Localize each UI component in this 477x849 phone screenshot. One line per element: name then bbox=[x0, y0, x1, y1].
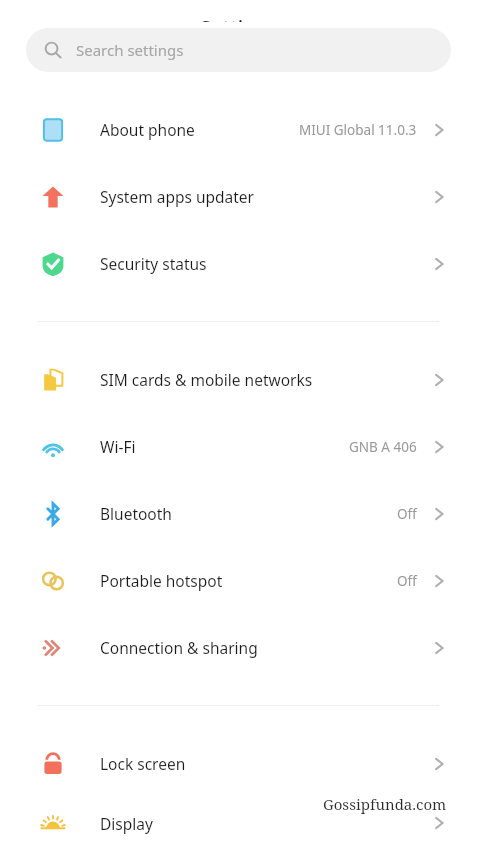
staticText: Settings bbox=[200, 14, 278, 22]
staticText: Wi-Fi bbox=[100, 436, 136, 457]
button[interactable]: Connection & sharing bbox=[0, 614, 477, 681]
staticText: Lock screen bbox=[100, 753, 186, 774]
staticText: System apps updater bbox=[100, 186, 254, 207]
button[interactable]: Search settings bbox=[26, 28, 451, 72]
button[interactable]: Wi-Fi bbox=[0, 413, 477, 480]
button[interactable]: Display bbox=[0, 797, 477, 849]
staticText: Bluetooth bbox=[100, 503, 172, 524]
staticText: Display bbox=[100, 813, 153, 834]
staticText: Off bbox=[397, 572, 417, 590]
staticText: GNB A 406 bbox=[349, 438, 417, 456]
staticText: Security status bbox=[100, 253, 207, 274]
button[interactable]: Security status bbox=[0, 230, 477, 297]
staticText: Connection & sharing bbox=[100, 637, 258, 658]
staticText: SIM cards & mobile networks bbox=[100, 369, 313, 390]
staticText: Search settings bbox=[76, 40, 184, 60]
staticText: Gossipfunda.com bbox=[323, 794, 447, 814]
staticText: Portable hotspot bbox=[100, 570, 223, 591]
button[interactable]: System apps updater bbox=[0, 163, 477, 230]
button[interactable]: Bluetooth bbox=[0, 480, 477, 547]
staticText: Off bbox=[397, 505, 417, 523]
button[interactable]: Lock screen bbox=[0, 730, 477, 797]
staticText: About phone bbox=[100, 119, 195, 140]
staticText: MIUI Global 11.0.3 bbox=[299, 121, 417, 139]
button[interactable]: Portable hotspot bbox=[0, 547, 477, 614]
button[interactable]: SIM cards & mobile networks bbox=[0, 346, 477, 413]
button[interactable]: About phone bbox=[0, 96, 477, 163]
